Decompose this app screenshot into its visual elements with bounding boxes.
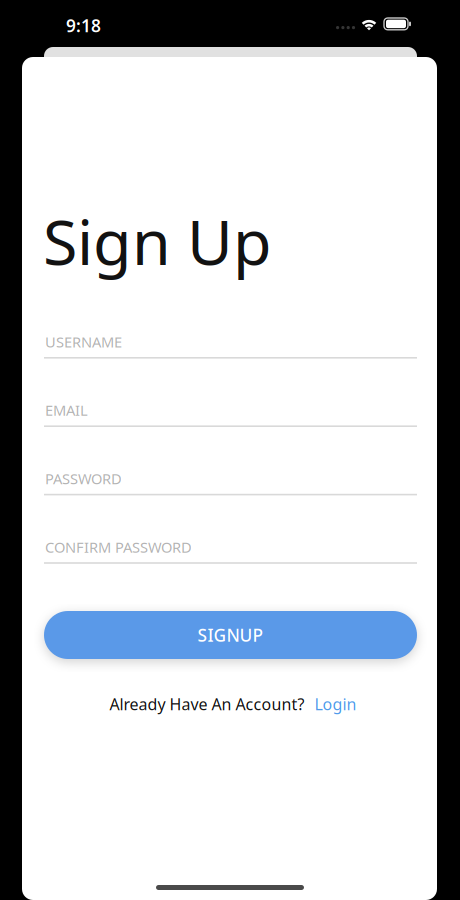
staticText: USERNAME xyxy=(45,332,122,351)
button[interactable]: CONFIRM PASSWORD xyxy=(44,540,417,570)
staticText: PASSWORD xyxy=(45,469,122,488)
staticText: 9:18 xyxy=(66,14,101,37)
staticText: CONFIRM PASSWORD xyxy=(45,537,192,557)
button[interactable]: PASSWORD xyxy=(44,472,417,502)
staticText: EMAIL xyxy=(45,400,88,420)
staticText: SIGNUP xyxy=(197,623,263,646)
button[interactable]: USERNAME xyxy=(44,335,417,365)
button[interactable]: Login xyxy=(314,693,356,715)
staticText: Sign Up xyxy=(43,199,272,282)
staticText: Already Have An Account? xyxy=(109,693,304,715)
button[interactable]: SIGNUP xyxy=(44,611,417,659)
button[interactable]: EMAIL xyxy=(44,403,417,433)
staticText: Login xyxy=(314,693,356,715)
